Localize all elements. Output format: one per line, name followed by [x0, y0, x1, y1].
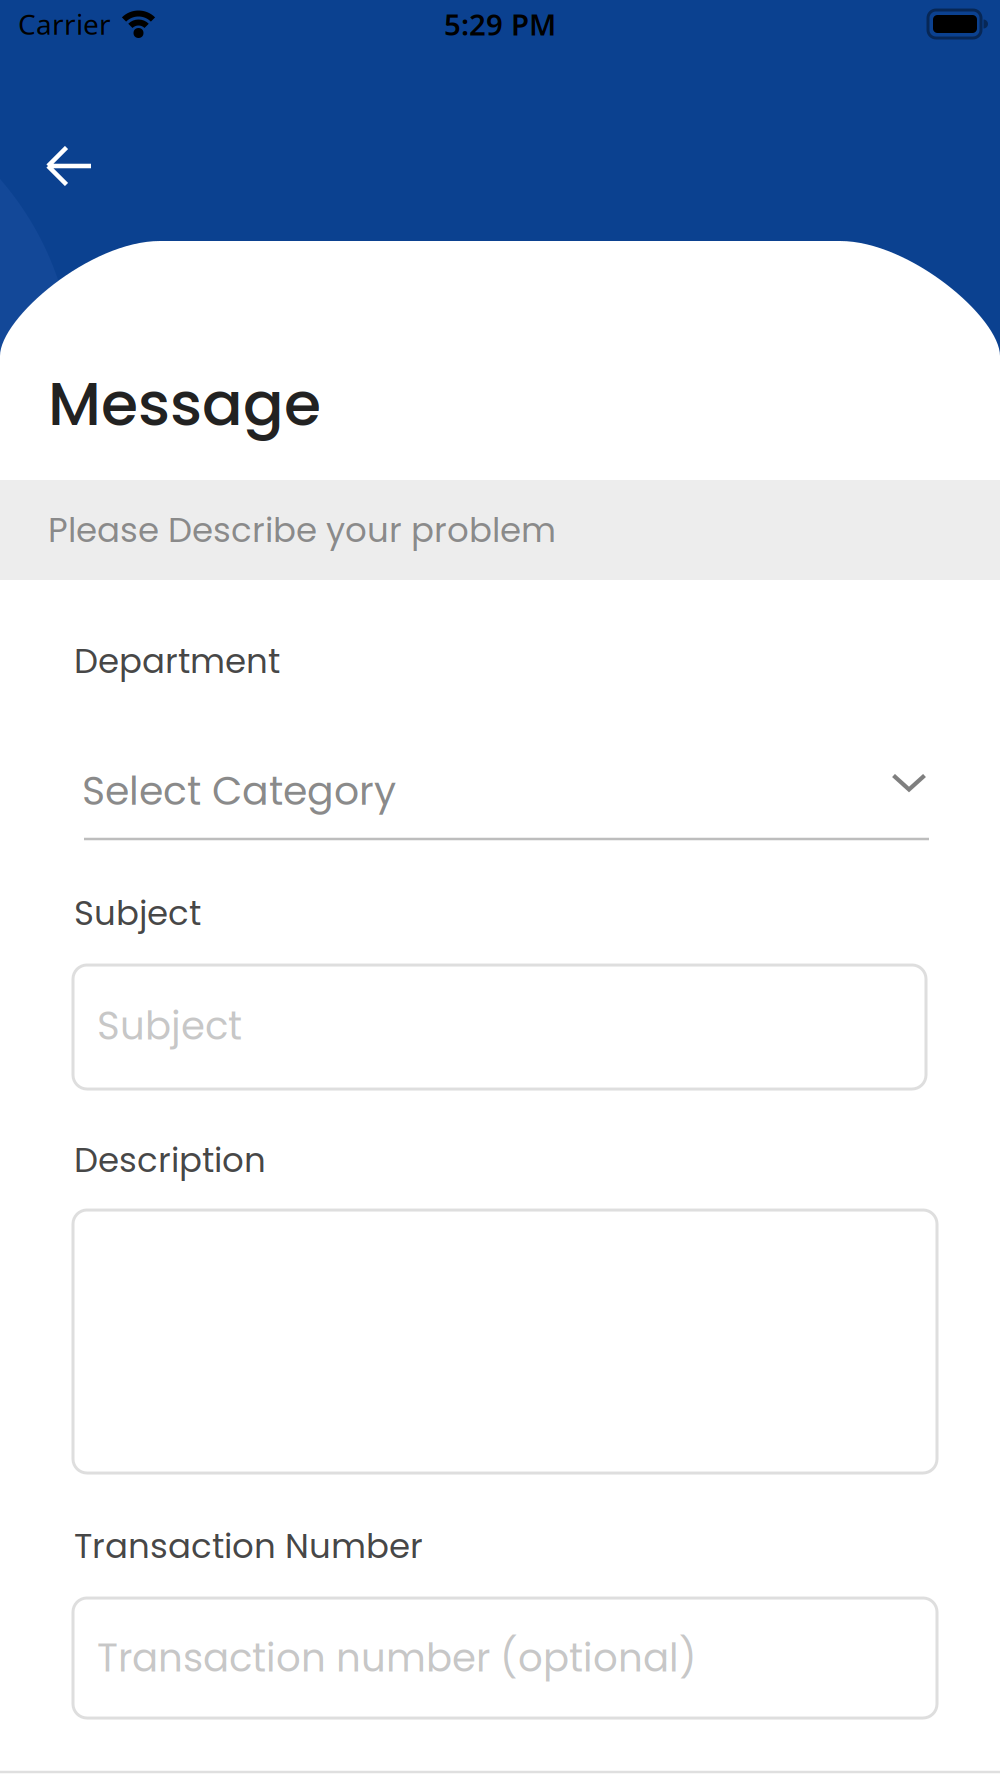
staticText: Transaction number (optional) — [97, 1631, 697, 1685]
staticText: Subject — [74, 889, 201, 937]
staticText: Message — [48, 362, 321, 446]
staticText: Carrier — [18, 5, 111, 43]
button[interactable]: Transaction number (optional) — [73, 1598, 937, 1718]
button[interactable]: Back — [34, 126, 114, 206]
staticText: Please Describe your problem — [48, 506, 556, 554]
button[interactable]: Description — [73, 1210, 937, 1473]
staticText: Department — [74, 637, 280, 685]
button[interactable]: Subject — [73, 965, 926, 1089]
staticText: Select Category — [82, 763, 396, 819]
staticText: 5:29 PM — [444, 4, 556, 43]
staticText: Transaction Number — [74, 1522, 423, 1570]
staticText: Description — [74, 1136, 266, 1184]
button[interactable]: Select Category — [82, 751, 927, 831]
staticText: Subject — [97, 999, 242, 1053]
